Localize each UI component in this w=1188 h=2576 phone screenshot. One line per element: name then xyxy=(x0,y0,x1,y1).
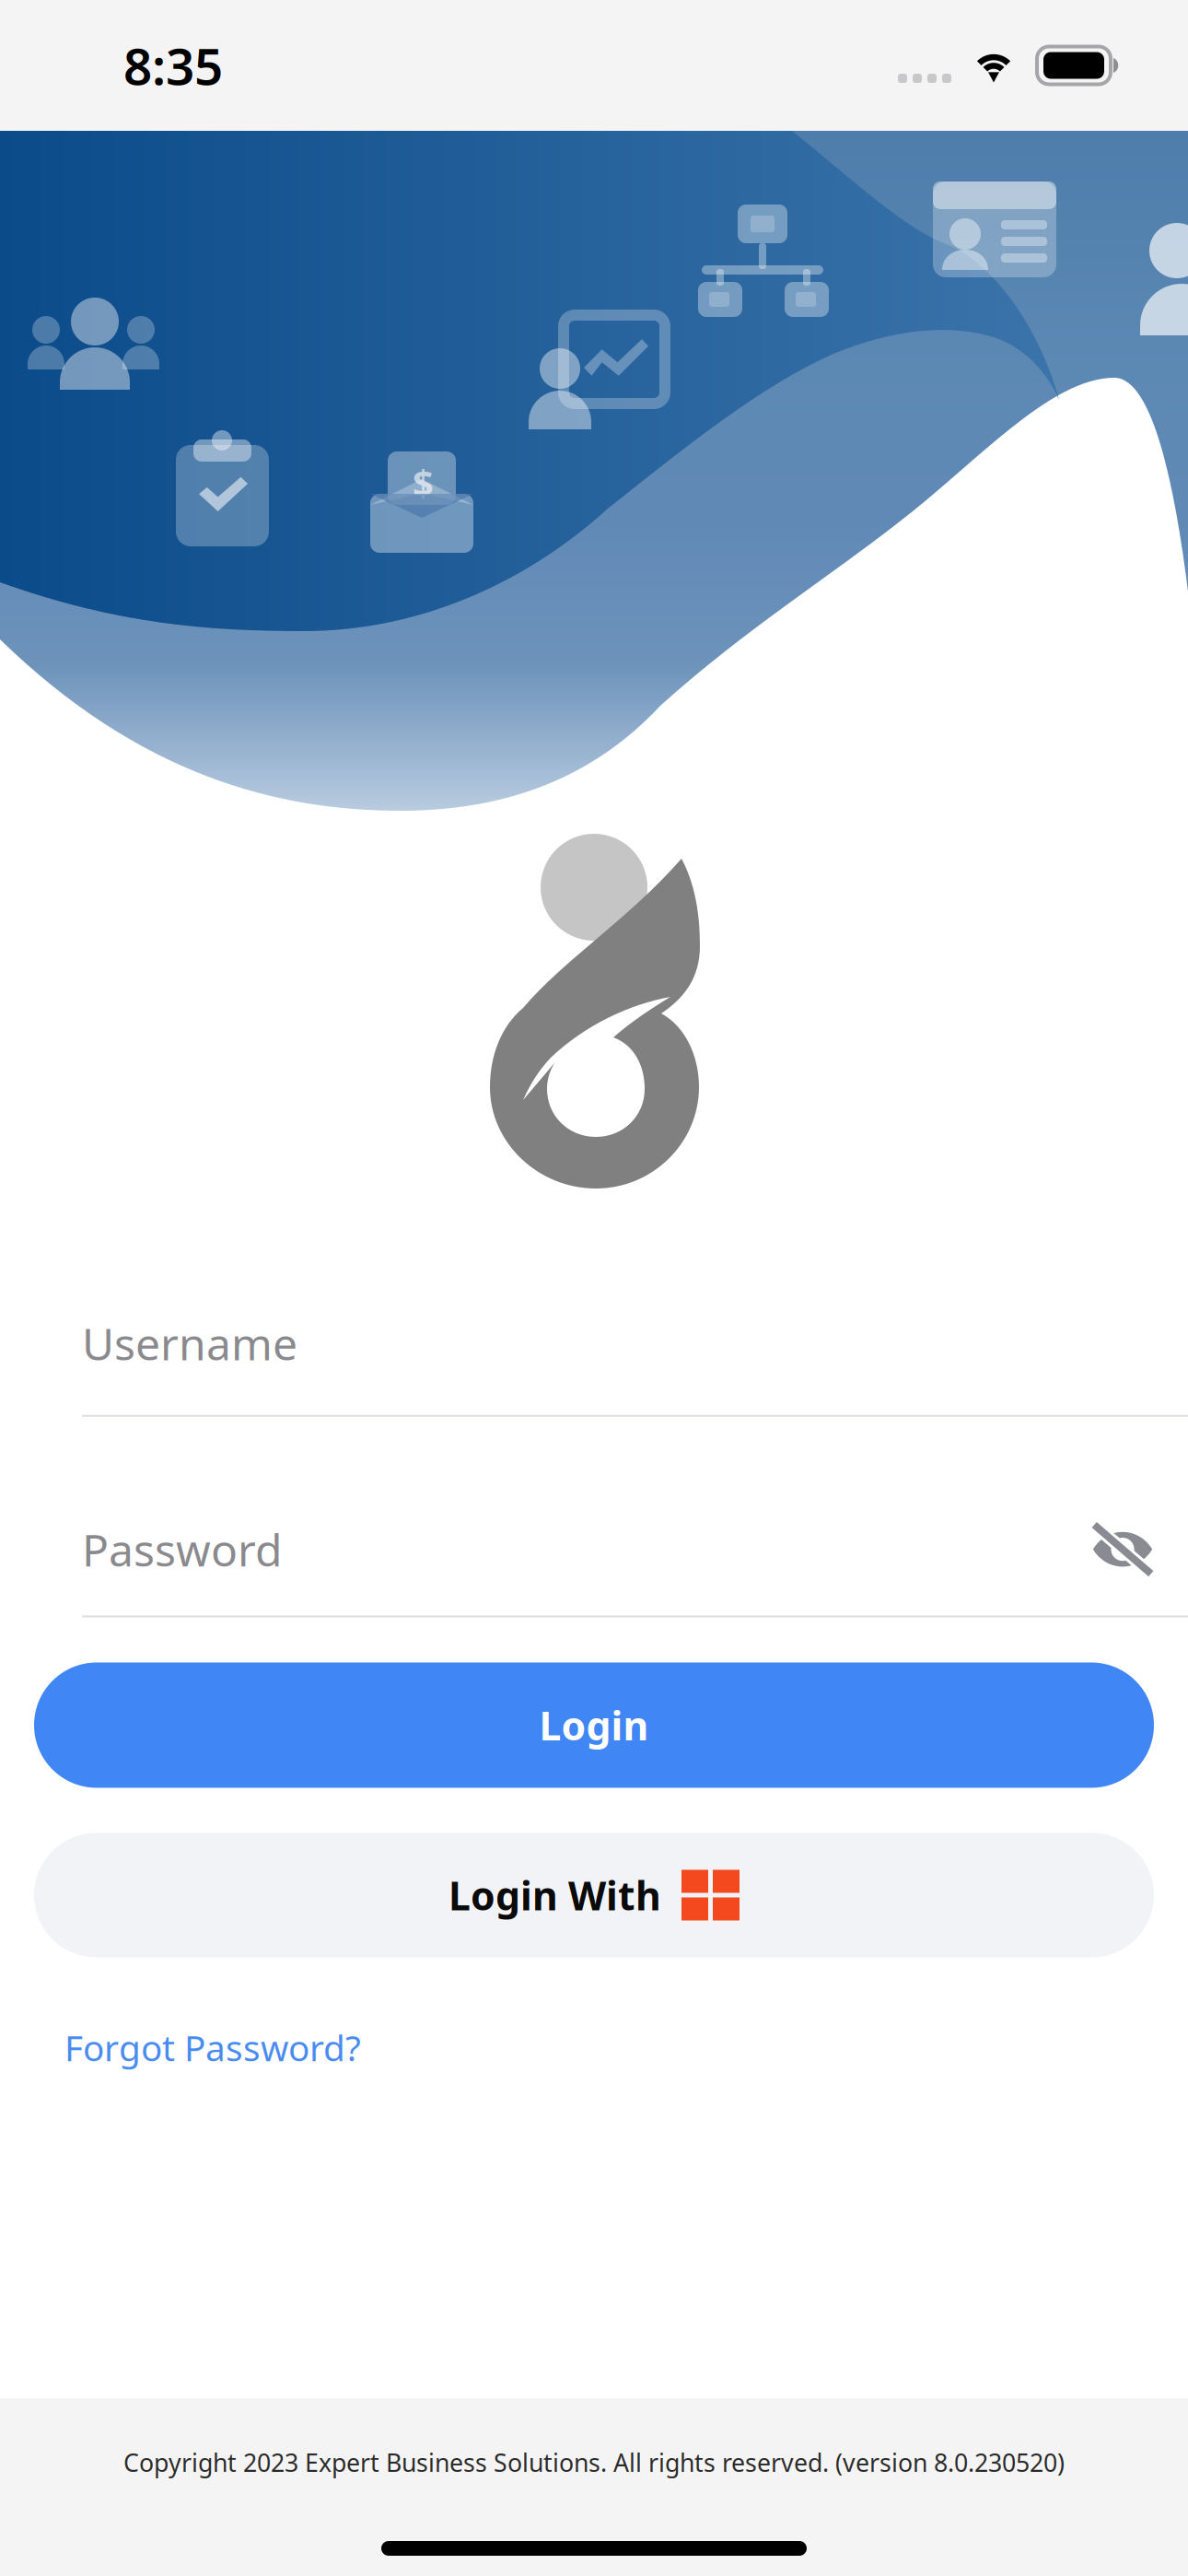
staticText: Username xyxy=(82,1314,297,1372)
button[interactable]: Forgot Password? xyxy=(0,2018,361,2076)
staticText: Forgot Password? xyxy=(64,2024,361,2071)
staticText: Login With xyxy=(448,1869,661,1921)
button[interactable]: Login xyxy=(34,1663,1154,1788)
staticText: Copyright 2023 Expert Business Solutions… xyxy=(123,2446,1065,2479)
staticText: 8:35 xyxy=(123,32,223,99)
staticText: $ xyxy=(413,458,434,507)
staticText: Password xyxy=(82,1520,283,1579)
staticText: Login xyxy=(539,1699,649,1751)
button[interactable]: Login With xyxy=(34,1833,1154,1957)
